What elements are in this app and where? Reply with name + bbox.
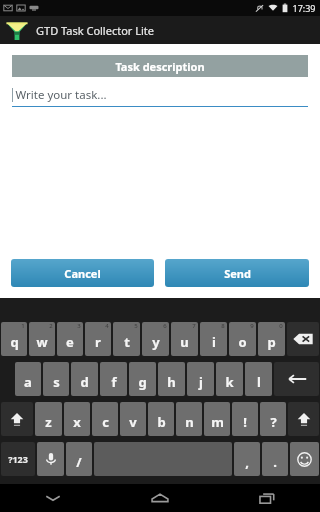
staticText: ?123 (8, 453, 28, 465)
button[interactable]: Enter (274, 362, 319, 396)
staticText: 7 (192, 322, 196, 330)
button[interactable]: g (129, 362, 156, 396)
button[interactable]: z (35, 402, 62, 436)
button[interactable]: 0 (258, 322, 285, 356)
staticText: 3 (77, 322, 81, 330)
staticText: / (76, 453, 82, 471)
button[interactable]: 8 (200, 322, 227, 356)
staticText: p (267, 333, 276, 351)
staticText: , (245, 453, 249, 471)
button[interactable]: 3 (57, 322, 83, 356)
button[interactable]: / (66, 442, 92, 476)
staticText: e (66, 333, 74, 351)
staticText: Send (224, 266, 251, 281)
staticText: q (10, 333, 19, 351)
button[interactable]: ! (232, 402, 258, 436)
staticText: y (152, 333, 160, 351)
staticText: u (180, 333, 189, 351)
button[interactable]: s (43, 362, 69, 396)
staticText: 4 (105, 322, 109, 330)
button[interactable]: c (92, 402, 118, 436)
staticText: b (157, 413, 166, 431)
button[interactable]: Home (106, 484, 213, 512)
staticText: GTD Task Collector Lite (36, 23, 154, 38)
staticText: 9 (250, 322, 254, 330)
button[interactable]: x (64, 402, 90, 436)
staticText: Task description (115, 59, 205, 74)
button[interactable]: Emoji (290, 442, 319, 476)
button[interactable]: Cancel (11, 259, 154, 287)
button[interactable]: Recent apps (213, 484, 320, 512)
staticText: l (257, 373, 261, 391)
staticText: f (111, 373, 117, 391)
button[interactable]: Voice input (37, 442, 64, 476)
staticText: n (185, 413, 194, 431)
staticText: ? (270, 413, 277, 431)
staticText: a (24, 373, 32, 391)
button[interactable]: l (245, 362, 272, 396)
button[interactable]: Shift (1, 402, 33, 436)
button[interactable]: d (71, 362, 98, 396)
staticText: c (102, 413, 109, 431)
button[interactable]: 9 (229, 322, 256, 356)
staticText: 5 (134, 322, 138, 330)
button[interactable]: Send (165, 259, 309, 287)
button[interactable]: . (262, 442, 288, 476)
staticText: Cancel (64, 266, 101, 281)
staticText: v (129, 413, 137, 431)
staticText: . (273, 453, 277, 471)
staticText: ! (243, 413, 247, 431)
button[interactable]: a (15, 362, 41, 396)
button[interactable]: ? (260, 402, 286, 436)
staticText: z (45, 413, 52, 431)
button[interactable]: m (204, 402, 230, 436)
button[interactable]: 6 (142, 322, 169, 356)
button[interactable]: Shift (288, 402, 319, 436)
staticText: 1 (21, 322, 25, 330)
staticText: s (53, 373, 60, 391)
staticText: 8 (221, 322, 225, 330)
button[interactable]: Backspace (287, 322, 319, 356)
button[interactable]: k (216, 362, 243, 396)
staticText: x (73, 413, 81, 431)
staticText: g (138, 373, 147, 391)
staticText: k (225, 373, 234, 391)
button[interactable]: , (234, 442, 260, 476)
button[interactable]: n (176, 402, 202, 436)
button[interactable]: f (100, 362, 127, 396)
staticText: j (199, 373, 203, 391)
button[interactable]: Write your task... (12, 87, 308, 107)
staticText: h (167, 373, 176, 391)
staticText: t (124, 333, 130, 351)
button[interactable]: b (148, 402, 174, 436)
staticText: i (212, 333, 216, 351)
button[interactable]: v (120, 402, 146, 436)
staticText: Write your task... (15, 87, 107, 103)
button[interactable]: 4 (85, 322, 111, 356)
staticText: d (80, 373, 89, 391)
staticText: 6 (163, 322, 167, 330)
staticText: 0 (279, 322, 283, 330)
button[interactable]: 1 (1, 322, 27, 356)
staticText: 17:39 (292, 2, 316, 14)
staticText: o (238, 333, 247, 351)
staticText: r (95, 333, 101, 351)
button[interactable]: Hide keyboard (0, 484, 106, 512)
button[interactable]: ?123 (1, 442, 35, 476)
button[interactable]: h (158, 362, 185, 396)
button[interactable]: 2 (29, 322, 55, 356)
button[interactable]: 7 (171, 322, 198, 356)
staticText: w (36, 333, 48, 351)
staticText: m (211, 413, 224, 431)
staticText: 2 (49, 322, 53, 330)
button[interactable]: j (187, 362, 214, 396)
button[interactable]: 5 (113, 322, 140, 356)
